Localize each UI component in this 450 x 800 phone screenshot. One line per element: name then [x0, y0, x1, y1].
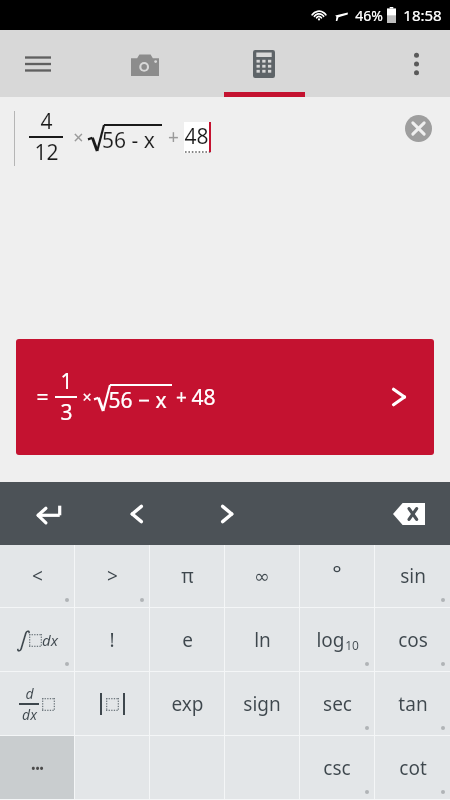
staticText: × [82, 386, 92, 408]
button[interactable]: Enter [26, 492, 70, 536]
staticText: 56 − x [108, 386, 167, 415]
button[interactable]: Camera [117, 36, 173, 92]
button[interactable]: exp [150, 672, 224, 735]
button[interactable]: ∫ [0, 608, 74, 671]
staticText: ∫ [16, 627, 28, 653]
button[interactable]: sin [375, 545, 450, 607]
staticText: 1 [60, 367, 73, 396]
staticText: × [73, 125, 84, 150]
button[interactable]: ln [225, 608, 299, 671]
staticText: cot [399, 755, 427, 781]
button[interactable]: π [150, 545, 224, 607]
staticText: sin [400, 563, 426, 589]
staticText: sec [323, 691, 352, 717]
staticText: 12 [34, 138, 59, 167]
button[interactable]: log [300, 608, 374, 671]
button[interactable]: Previous [115, 492, 159, 536]
button[interactable]: e [150, 608, 224, 671]
staticText: csc [323, 755, 351, 781]
staticText: cos [398, 627, 428, 653]
button[interactable]: csc [300, 736, 374, 799]
button[interactable] [75, 672, 149, 735]
staticText: ° [332, 557, 342, 587]
staticText: 18:58 [403, 5, 442, 25]
staticText: log [316, 627, 345, 653]
button[interactable]: tan [375, 672, 450, 735]
button[interactable]: Next [205, 492, 249, 536]
staticText: < [32, 563, 43, 589]
button[interactable]: cos [375, 608, 450, 671]
button[interactable]: d [0, 672, 74, 735]
staticText: + [168, 124, 179, 150]
staticText: ln [254, 627, 271, 653]
button[interactable]: Clear [405, 115, 432, 142]
staticText: 10 [345, 637, 359, 653]
staticText: ••• [31, 760, 44, 775]
button[interactable]: = [16, 339, 434, 455]
staticText: dx [22, 705, 37, 724]
staticText: + [176, 384, 187, 410]
button[interactable]: More options [392, 40, 440, 88]
staticText: dx [42, 630, 58, 650]
staticText: 48 [184, 122, 209, 151]
button[interactable]: < [0, 545, 74, 607]
button[interactable]: Calculator [236, 36, 292, 92]
staticText: sign [243, 691, 281, 717]
staticText: e [182, 627, 193, 653]
staticText: tan [398, 691, 428, 717]
button[interactable]: sign [225, 672, 299, 735]
button[interactable]: Menu [14, 40, 62, 88]
staticText: 3 [60, 398, 73, 427]
staticText: exp [171, 691, 204, 717]
button[interactable]: cot [375, 736, 450, 799]
staticText: > [107, 563, 118, 589]
button[interactable]: ∞ [225, 545, 299, 607]
staticText: ! [109, 627, 115, 653]
staticText: ∞ [254, 565, 270, 587]
staticText: 4 [40, 107, 53, 136]
button[interactable]: ° [300, 545, 374, 607]
button[interactable]: ! [75, 608, 149, 671]
button[interactable]: Backspace [386, 491, 432, 537]
button[interactable]: sec [300, 672, 374, 735]
button[interactable]: > [75, 545, 149, 607]
staticText: d [25, 684, 34, 703]
staticText: = [36, 383, 49, 412]
staticText: 48 [191, 383, 216, 412]
button[interactable]: ••• [0, 736, 74, 799]
staticText: 56 - x [102, 126, 155, 155]
staticText: π [181, 563, 194, 589]
staticText: 46% [355, 6, 383, 25]
